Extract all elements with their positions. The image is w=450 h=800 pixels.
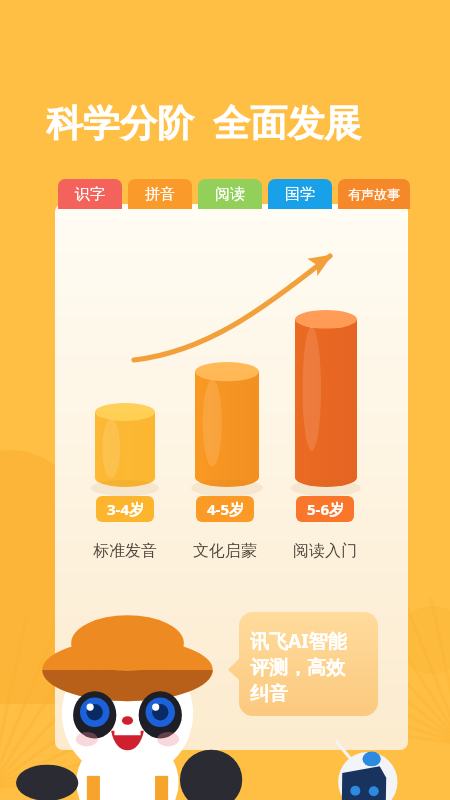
staticText: 文化启蒙 — [193, 541, 257, 561]
button[interactable]: 阅读 — [198, 179, 262, 209]
button[interactable]: 有声故事 — [338, 179, 410, 209]
button[interactable]: 5-6岁 — [296, 496, 354, 522]
staticText: 讯飞AI智能 评测，高效 纠音 — [250, 628, 347, 706]
button[interactable]: 拼音 — [128, 179, 192, 209]
staticText: 识字 — [75, 185, 105, 204]
staticText: 标准发音 — [93, 541, 157, 561]
button[interactable]: 4-5岁 — [196, 496, 254, 522]
button[interactable]: 识字 — [58, 179, 122, 209]
staticText: 国学 — [285, 185, 315, 204]
staticText: 5-6岁 — [307, 499, 344, 519]
staticText: 拼音 — [145, 185, 175, 204]
other: Robot — [330, 735, 420, 800]
button[interactable]: 国学 — [268, 179, 332, 209]
staticText: 有声故事 — [348, 186, 400, 202]
staticText: 阅读入门 — [293, 541, 357, 561]
other: Panda mascot — [20, 640, 235, 800]
staticText: 3-4岁 — [107, 499, 144, 519]
button[interactable]: 3-4岁 — [96, 496, 154, 522]
staticText: 4-5岁 — [207, 499, 244, 519]
staticText: 科学分阶 全面发展 — [46, 96, 362, 144]
staticText: 阅读 — [215, 185, 245, 204]
